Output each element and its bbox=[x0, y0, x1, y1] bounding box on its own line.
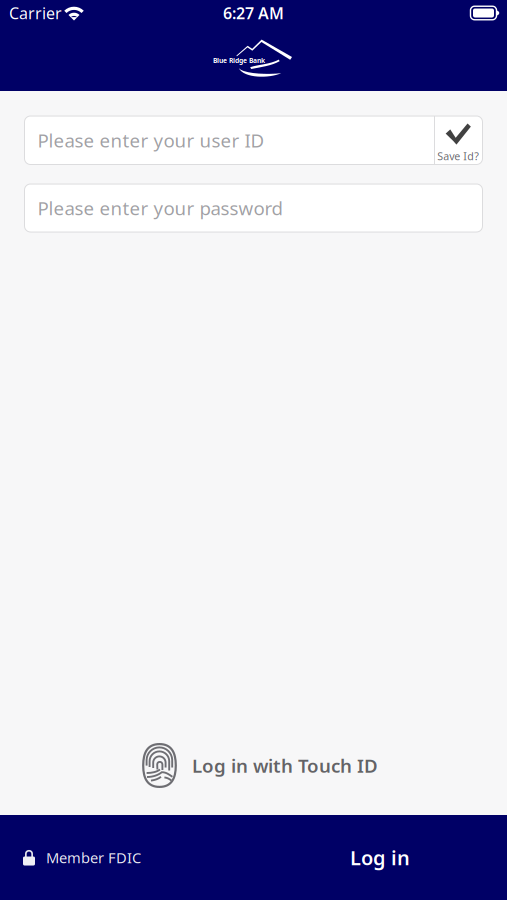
staticText: Blue Ridge Bank bbox=[213, 56, 265, 65]
staticText: 6:27 AM bbox=[223, 2, 284, 24]
button[interactable]: Log in with Touch ID bbox=[121, 737, 386, 794]
button[interactable]: Member FDIC bbox=[0, 840, 141, 875]
staticText: Log in with Touch ID bbox=[192, 753, 378, 778]
button[interactable]: Save Id? bbox=[434, 116, 482, 164]
button[interactable]: Log in bbox=[340, 836, 420, 879]
staticText: Please enter your password bbox=[37, 196, 282, 220]
staticText: Save Id? bbox=[437, 149, 479, 163]
staticText: Please enter your user ID bbox=[37, 128, 264, 153]
staticText: Member FDIC bbox=[46, 848, 141, 867]
staticText: Log in bbox=[350, 844, 410, 871]
staticText: Carrier bbox=[9, 2, 62, 24]
